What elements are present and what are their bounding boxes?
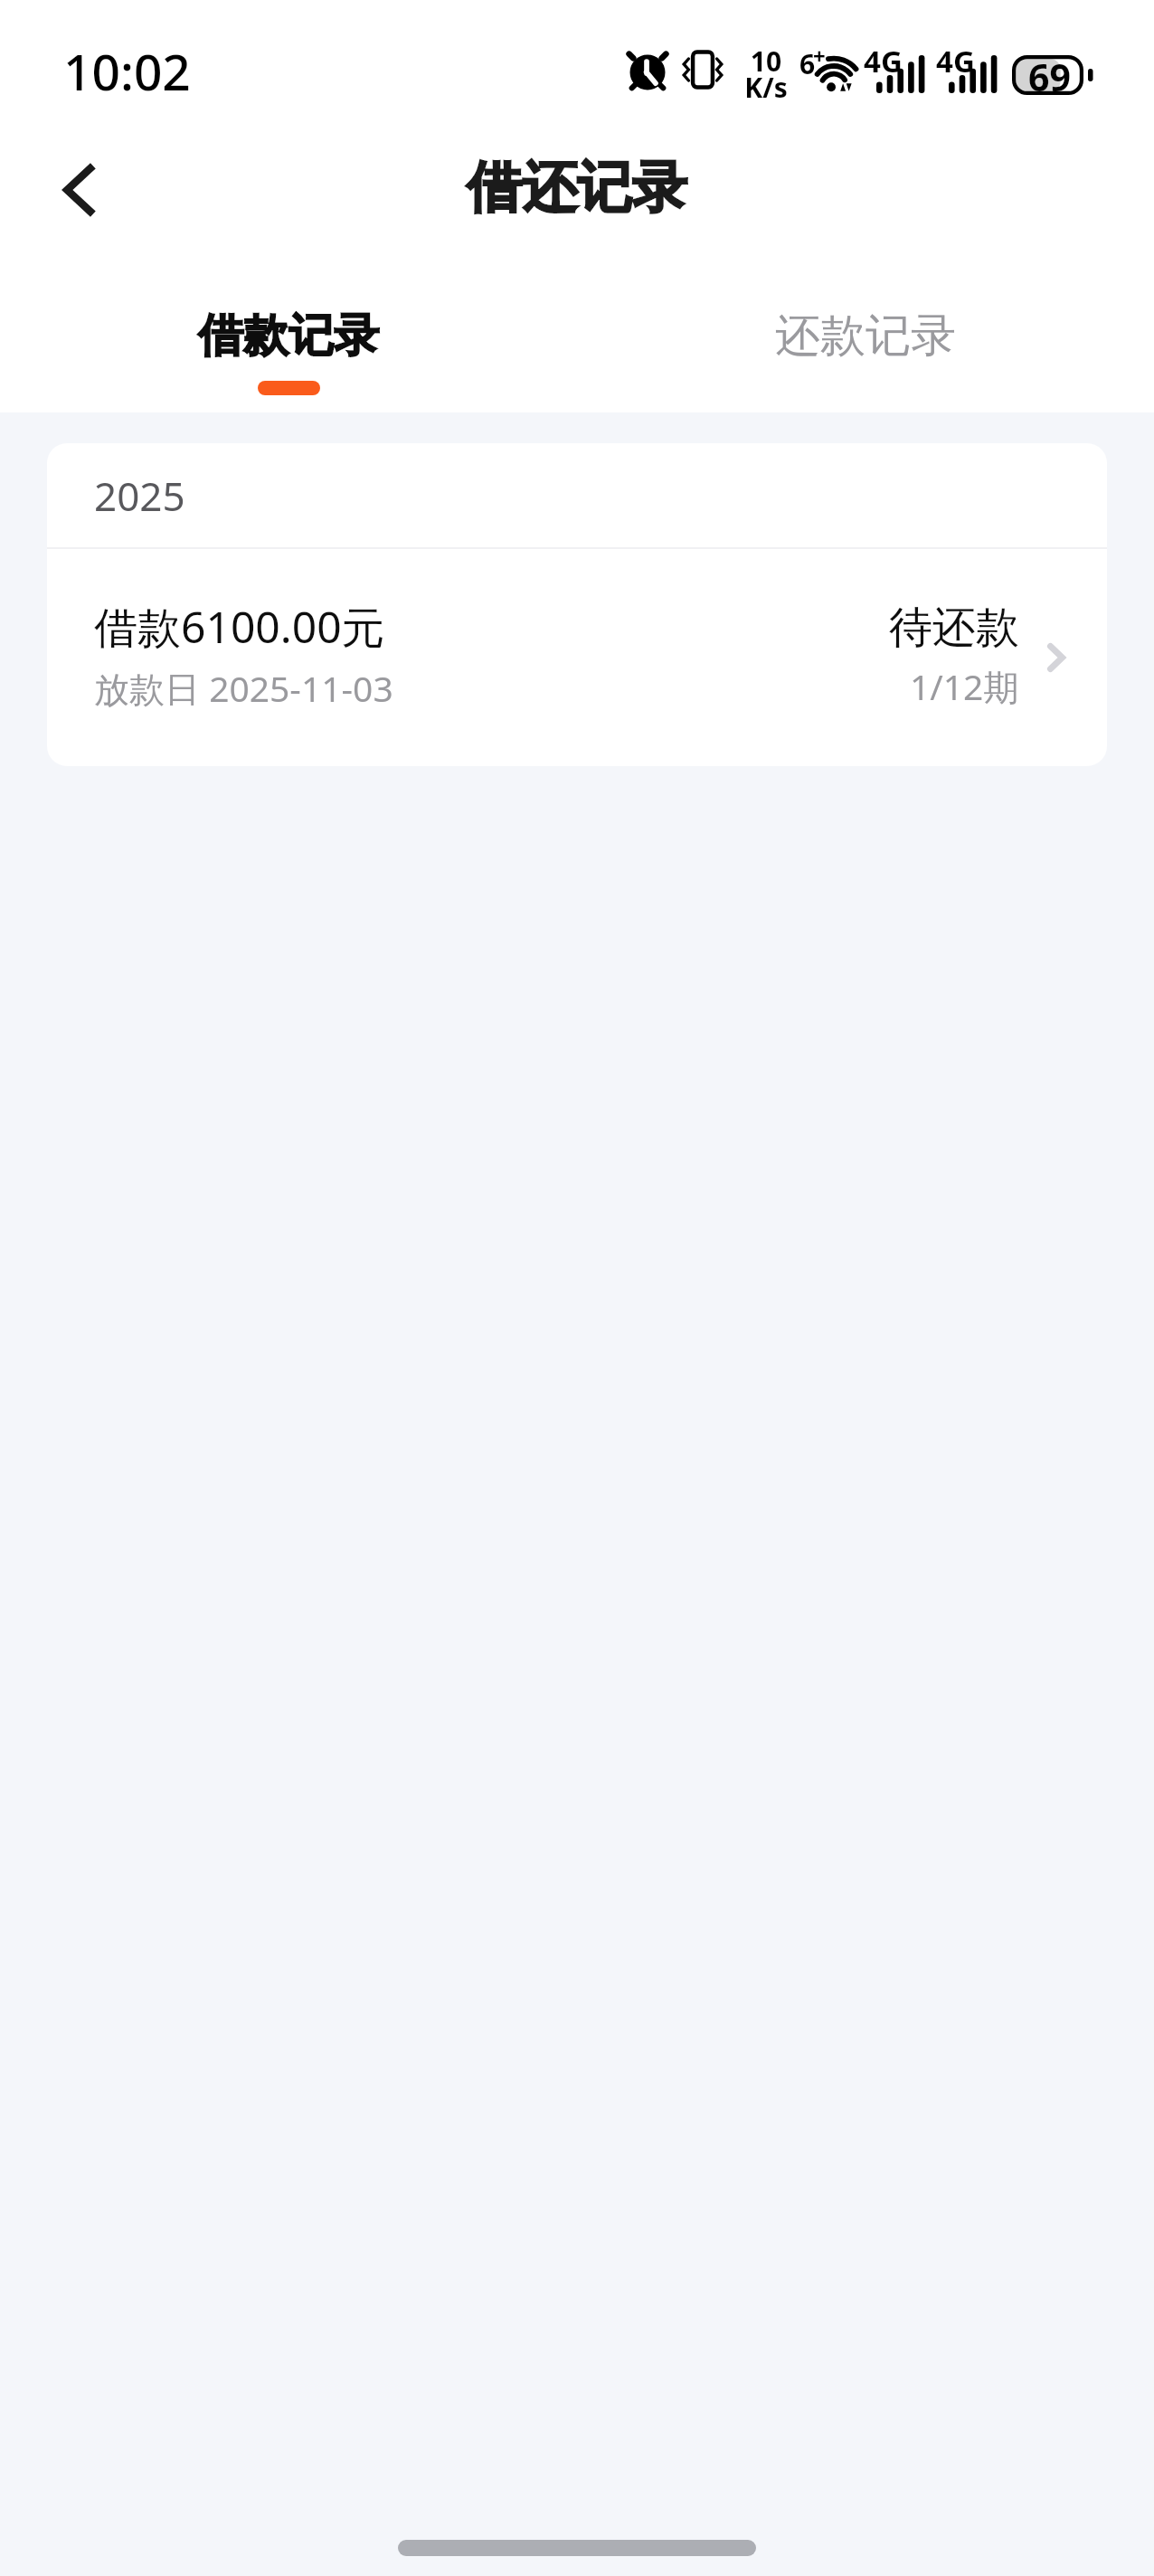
staticText: 1/12期 [910, 662, 1019, 710]
staticText: 借款6100.00元 [94, 597, 385, 657]
button[interactable]: 还款记录 [577, 253, 1154, 412]
staticText: 4G [864, 41, 903, 81]
staticText: 10:02 [63, 37, 191, 105]
staticText: 2025 [94, 469, 185, 523]
staticText: 待还款 [889, 601, 1019, 655]
staticText: 借还记录 [467, 153, 687, 223]
button[interactable]: Back [22, 133, 136, 247]
staticText: 4G [936, 41, 975, 81]
staticText: 放款日 2025-11-03 [94, 664, 393, 712]
staticText: 还款记录 [775, 308, 956, 365]
staticText: 10 K/s [744, 43, 788, 106]
staticText: 69 [1028, 52, 1071, 91]
staticText: 6 [799, 45, 816, 82]
staticText: + [813, 41, 826, 71]
button[interactable]: 借款记录 [0, 253, 577, 412]
staticText: 借款记录 [198, 308, 379, 365]
button[interactable]: 借款6100.00元 [47, 549, 1107, 766]
